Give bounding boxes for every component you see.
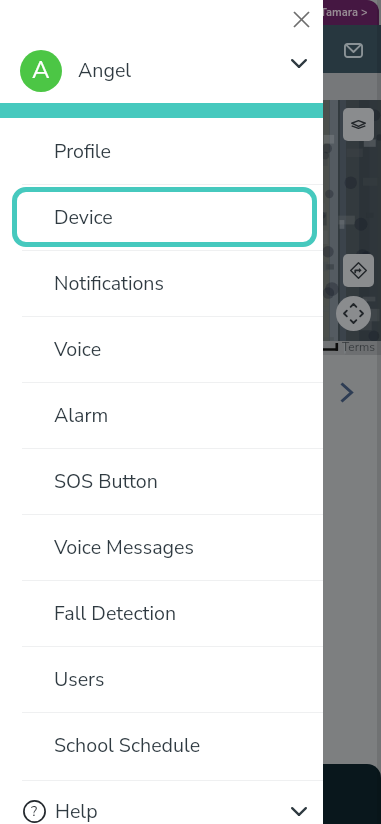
button[interactable]: Notifications — [0, 250, 323, 316]
staticText: Profile — [54, 138, 111, 165]
button[interactable]: Alarm — [0, 382, 323, 448]
button[interactable]: A — [20, 50, 62, 92]
staticText: Fall Detection — [54, 600, 177, 627]
button[interactable]: Voice Messages — [0, 514, 323, 580]
button[interactable]: Map layers — [343, 108, 374, 141]
staticText: A — [32, 54, 50, 87]
staticText: Alarm — [54, 402, 109, 429]
button[interactable]: Tamara > — [320, 5, 368, 20]
other: Next — [340, 382, 353, 403]
button[interactable]: ? — [0, 780, 323, 824]
staticText: Voice Messages — [54, 534, 194, 561]
button[interactable]: Directions — [343, 254, 374, 287]
other: Messages — [344, 43, 363, 58]
button[interactable]: Recenter map — [336, 296, 371, 331]
button[interactable]: Fall Detection — [0, 580, 323, 646]
staticText: Angel — [78, 57, 132, 84]
staticText: Help — [55, 798, 98, 824]
button[interactable]: SOS Button — [0, 448, 323, 514]
staticText: Voice — [54, 336, 102, 363]
staticText: School Schedule — [54, 732, 201, 759]
staticText: Tamara > — [320, 5, 368, 20]
button[interactable]: Device — [0, 184, 323, 250]
button[interactable]: Close menu — [287, 5, 315, 33]
button[interactable]: School Schedule — [0, 712, 323, 778]
staticText: Notifications — [54, 270, 164, 297]
staticText: SOS Button — [54, 468, 158, 495]
staticText: Users — [54, 666, 105, 693]
button[interactable]: Voice — [0, 316, 323, 382]
button[interactable]: Switch account — [281, 45, 317, 81]
button[interactable]: Profile — [0, 118, 323, 184]
button[interactable]: Expand help — [281, 793, 317, 824]
staticText: Device — [54, 204, 113, 231]
staticText: ? — [31, 802, 38, 821]
staticText: Terms — [342, 339, 376, 355]
button[interactable]: Users — [0, 646, 323, 712]
